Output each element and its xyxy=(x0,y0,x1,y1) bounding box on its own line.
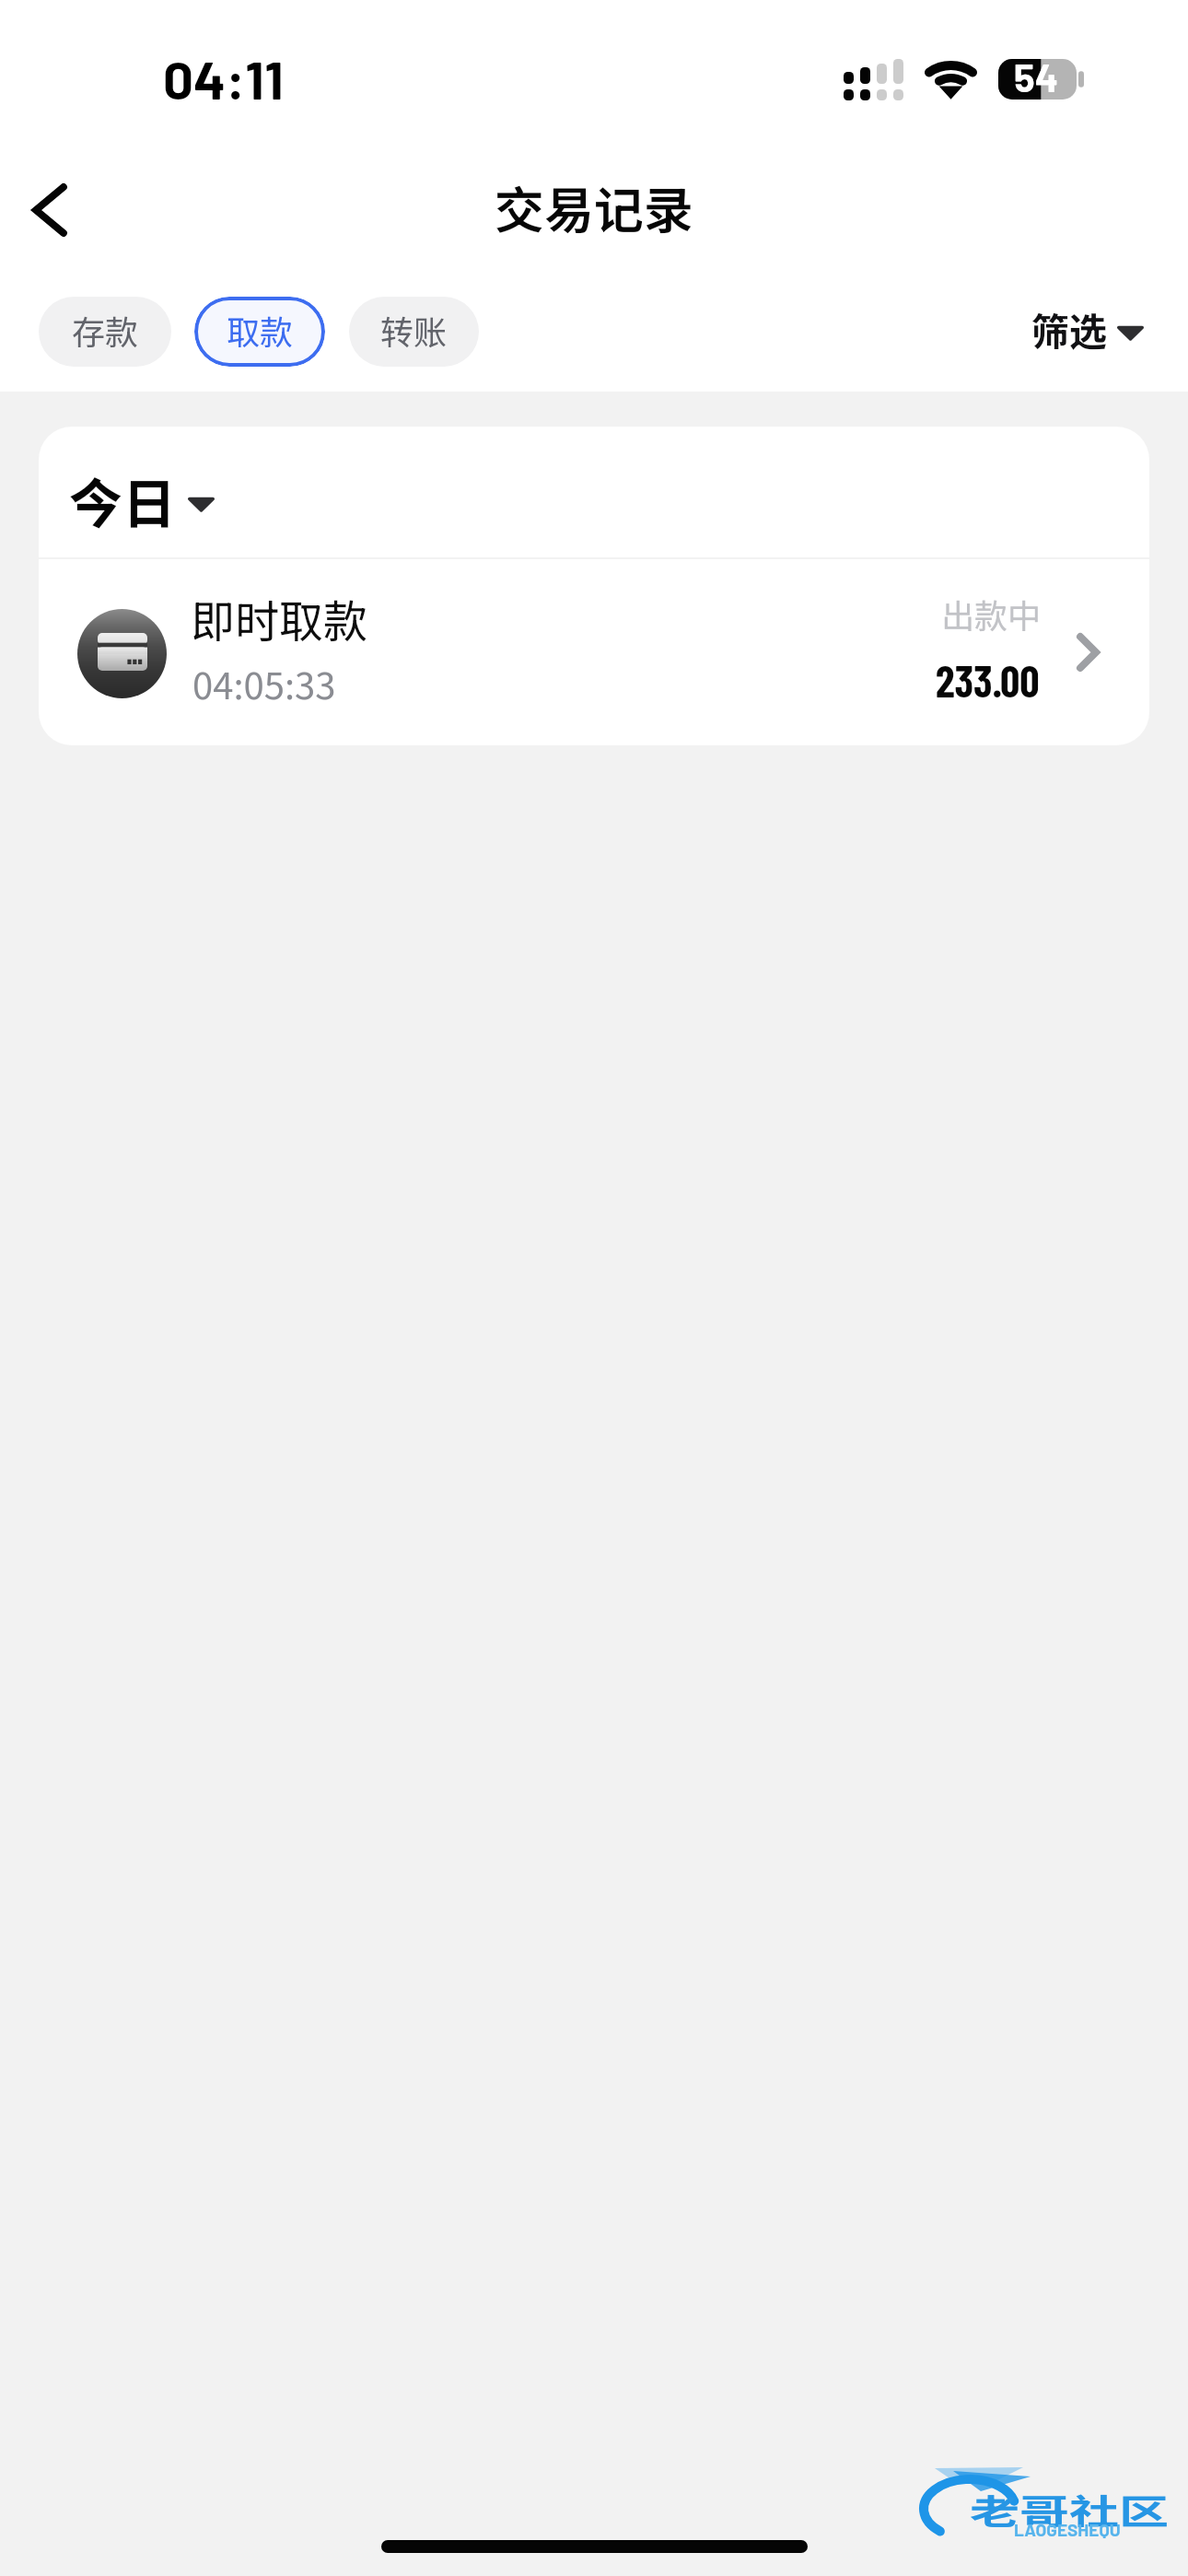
staticText: 老哥社区 xyxy=(970,2484,1169,2534)
staticText: 04:11 xyxy=(163,46,284,111)
staticText: 存款 xyxy=(72,306,139,354)
staticText: 交易记录 xyxy=(495,170,693,242)
button[interactable]: 存款 xyxy=(39,297,171,367)
button[interactable]: 取款 xyxy=(194,297,325,367)
button[interactable]: 即时取款 xyxy=(39,559,1149,745)
staticText: 筛选 xyxy=(1031,301,1107,356)
button[interactable]: 筛选 xyxy=(1024,299,1153,366)
button[interactable]: 转账 xyxy=(349,297,479,367)
staticText: 今日 xyxy=(69,462,177,539)
staticText: LAOGESHEQU xyxy=(1014,2519,1121,2540)
button[interactable]: Back xyxy=(0,155,101,263)
staticText: 取款 xyxy=(227,306,294,354)
staticText: 233.00 xyxy=(936,654,1040,706)
staticText: 即时取款 xyxy=(191,586,368,650)
staticText: 04:05:33 xyxy=(192,657,336,710)
staticText: 出款中 xyxy=(941,590,1042,638)
button[interactable]: 今日 xyxy=(61,441,273,537)
staticText: 转账 xyxy=(380,306,448,354)
staticText: 54 xyxy=(1014,53,1059,94)
